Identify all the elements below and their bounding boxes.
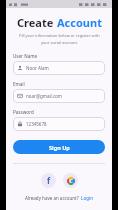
button[interactable]: Noor Alam [13, 61, 105, 75]
button[interactable]: Sign up with Facebook [41, 173, 56, 188]
staticText: Account [57, 15, 102, 30]
staticText: 12345678 [26, 121, 47, 127]
staticText: User Name [13, 53, 38, 59]
staticText: noar@gmail.com [26, 93, 63, 99]
staticText: Fill your information below or register … [19, 33, 100, 45]
staticText: Already have an account? [25, 195, 79, 201]
button[interactable]: Login [81, 195, 93, 201]
staticText: Create [17, 15, 57, 30]
button[interactable]: noar@gmail.com [13, 89, 105, 103]
button[interactable]: Sign Up [13, 140, 105, 154]
staticText: Login [81, 195, 93, 201]
staticText: Email [13, 81, 25, 87]
button[interactable]: Sign up with Google [63, 173, 78, 188]
button[interactable]: 12345678 [13, 117, 105, 131]
staticText: Noor Alam [26, 65, 49, 71]
staticText: f [47, 175, 51, 186]
staticText: Sign Up [49, 144, 70, 151]
staticText: Password [13, 109, 34, 115]
